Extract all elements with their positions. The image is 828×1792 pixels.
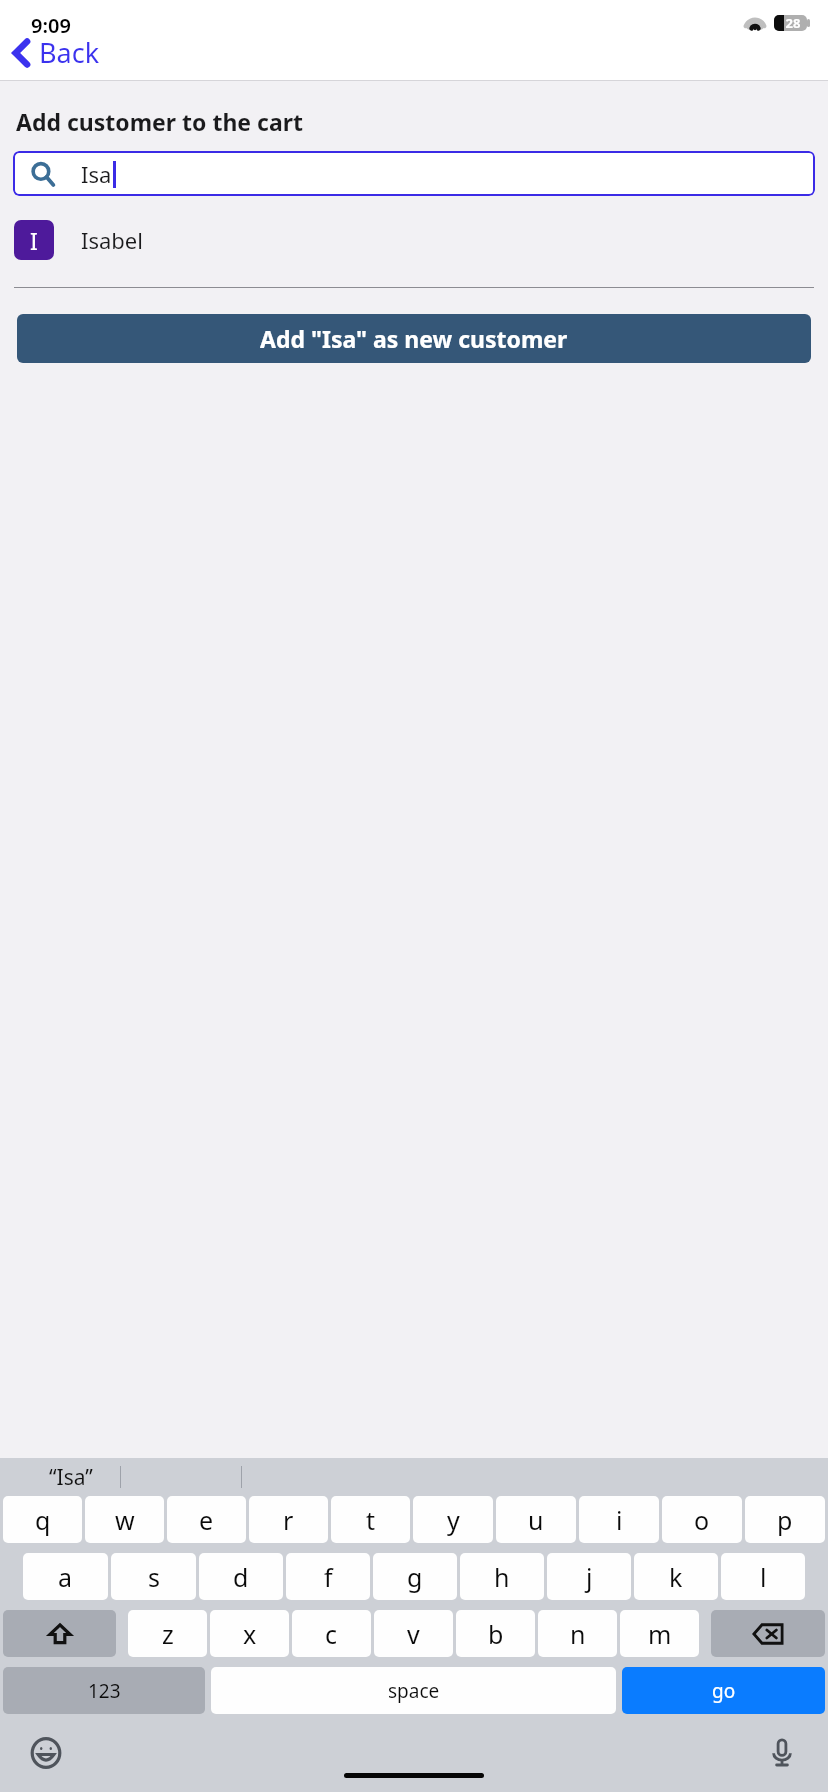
button[interactable]: n: [538, 1610, 617, 1657]
staticText: 28: [779, 14, 807, 32]
button[interactable]: j: [547, 1553, 631, 1600]
staticText: k: [669, 1560, 683, 1594]
staticText: i: [616, 1503, 623, 1537]
button[interactable]: u: [496, 1496, 576, 1543]
button[interactable]: s: [111, 1553, 196, 1600]
button[interactable]: d: [199, 1553, 283, 1600]
staticText: Isa: [81, 159, 112, 189]
button[interactable]: f: [286, 1553, 370, 1600]
button[interactable]: e: [167, 1496, 246, 1543]
button[interactable]: t: [331, 1496, 410, 1543]
button[interactable]: b: [456, 1610, 535, 1657]
staticText: h: [494, 1560, 510, 1594]
staticText: space: [388, 1678, 440, 1704]
button[interactable]: h: [460, 1553, 544, 1600]
button[interactable]: c: [292, 1610, 371, 1657]
staticText: w: [115, 1503, 135, 1537]
button[interactable]: y: [413, 1496, 493, 1543]
staticText: f: [324, 1560, 333, 1594]
button[interactable]: Back: [6, 30, 112, 75]
staticText: d: [233, 1560, 249, 1594]
staticText: n: [570, 1617, 586, 1651]
staticText: t: [366, 1503, 376, 1537]
staticText: m: [648, 1617, 672, 1651]
button[interactable]: Dictation: [760, 1731, 804, 1775]
button[interactable]: Add "Isa" as new customer: [17, 314, 811, 363]
button[interactable]: w: [85, 1496, 164, 1543]
button[interactable]: z: [128, 1610, 207, 1657]
staticText: y: [447, 1503, 460, 1537]
button[interactable]: Backspace: [711, 1610, 825, 1657]
staticText: e: [199, 1503, 214, 1537]
button[interactable]: g: [373, 1553, 457, 1600]
staticText: j: [586, 1560, 593, 1594]
button[interactable]: a: [23, 1553, 108, 1600]
button[interactable]: I: [0, 217, 828, 263]
button[interactable]: Emoji: [24, 1731, 68, 1775]
staticText: r: [283, 1503, 294, 1537]
button[interactable]: v: [374, 1610, 453, 1657]
button[interactable]: k: [634, 1553, 718, 1600]
button[interactable]: Shift: [3, 1610, 116, 1657]
staticText: Add "Isa" as new customer: [260, 323, 568, 354]
staticText: s: [148, 1560, 160, 1594]
staticText: a: [58, 1560, 73, 1594]
button[interactable]: m: [620, 1610, 699, 1657]
button[interactable]: space: [211, 1667, 616, 1714]
staticText: l: [760, 1560, 767, 1594]
staticText: g: [407, 1560, 423, 1594]
staticText: Back: [39, 34, 100, 71]
staticText: I: [30, 225, 38, 256]
button[interactable]: Isa: [13, 151, 815, 196]
staticText: v: [407, 1617, 420, 1651]
staticText: 123: [88, 1678, 121, 1704]
staticText: go: [712, 1678, 736, 1704]
staticText: o: [694, 1503, 710, 1537]
button[interactable]: q: [3, 1496, 82, 1543]
staticText: x: [243, 1617, 257, 1651]
button[interactable]: x: [210, 1610, 289, 1657]
staticText: q: [35, 1503, 51, 1537]
button[interactable]: 123: [3, 1667, 205, 1714]
staticText: 9:09: [31, 12, 71, 39]
staticText: Isabel: [81, 225, 143, 255]
staticText: u: [528, 1503, 544, 1537]
staticText: p: [777, 1503, 793, 1537]
button[interactable]: “Isa”: [45, 1459, 97, 1496]
button[interactable]: l: [721, 1553, 805, 1600]
button[interactable]: o: [662, 1496, 742, 1543]
staticText: c: [325, 1617, 338, 1651]
button[interactable]: go: [622, 1667, 825, 1714]
button[interactable]: r: [249, 1496, 328, 1543]
staticText: z: [162, 1617, 174, 1651]
staticText: b: [488, 1617, 504, 1651]
button[interactable]: p: [745, 1496, 825, 1543]
button[interactable]: i: [579, 1496, 659, 1543]
staticText: Add customer to the cart: [16, 106, 303, 137]
